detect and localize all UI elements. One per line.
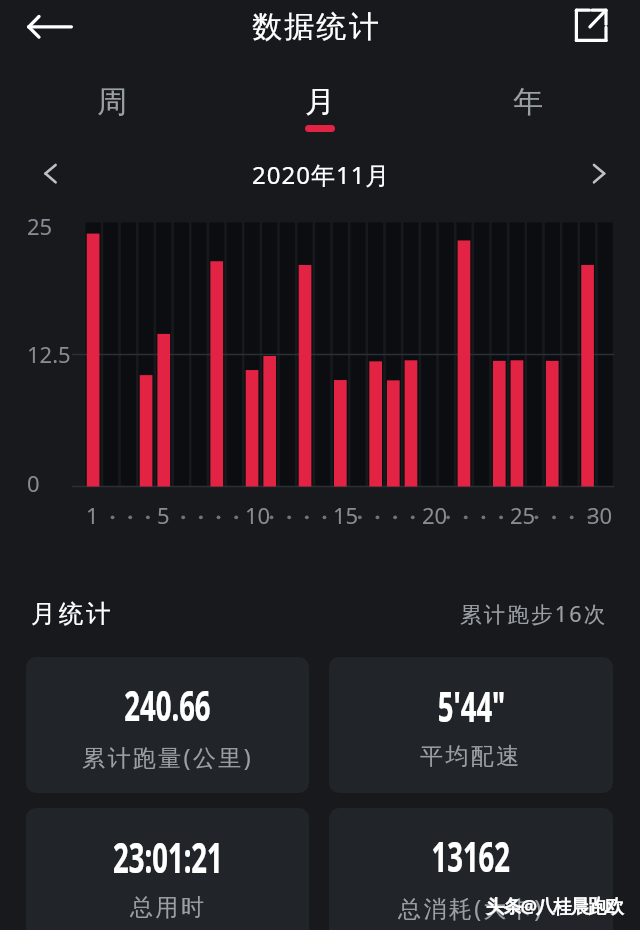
staticText: 月统计 [31,598,114,629]
button[interactable]: 13162 [329,808,613,930]
staticText: 25 [27,211,53,241]
staticText: 10 [245,500,271,530]
staticText: 2020年11月 [252,158,391,191]
button[interactable]: Back [18,2,74,52]
staticText: 5'44" [438,678,505,734]
staticText: 头条@八桂晨跑欧 [486,893,623,918]
staticText: 25 [510,500,536,530]
staticText: 总用时 [130,893,207,922]
staticText: 0 [27,468,40,498]
staticText: 数据统计 [252,8,382,46]
staticText: 13162 [431,828,511,884]
staticText: 平均配速 [420,742,522,771]
staticText: 月 [305,83,335,121]
button[interactable]: 240.66 [26,657,309,793]
staticText: 累计跑量(公里) [82,741,253,772]
button[interactable]: Next month [569,152,613,196]
staticText: 累计跑步16次 [460,599,608,628]
staticText: 20 [422,500,448,530]
button[interactable]: 23:01:21 [26,808,309,930]
staticText: 240.66 [124,677,211,733]
staticText: 周 [97,83,127,121]
staticText: 23:01:21 [113,829,223,885]
button[interactable]: Previous month [27,152,71,196]
staticText: 1 [86,500,99,530]
staticText: 15 [333,500,359,530]
button[interactable]: 年 [424,72,632,142]
staticText: 12.5 [27,339,71,369]
staticText: 总消耗(大卡) [398,892,544,923]
staticText: 年 [513,83,543,121]
button[interactable]: Share [566,3,618,55]
button[interactable]: 周 [8,72,216,142]
staticText: 30 [587,500,613,530]
button[interactable]: 月 [216,72,424,142]
staticText: 5 [157,500,170,530]
button[interactable]: 5'44" [329,657,613,793]
